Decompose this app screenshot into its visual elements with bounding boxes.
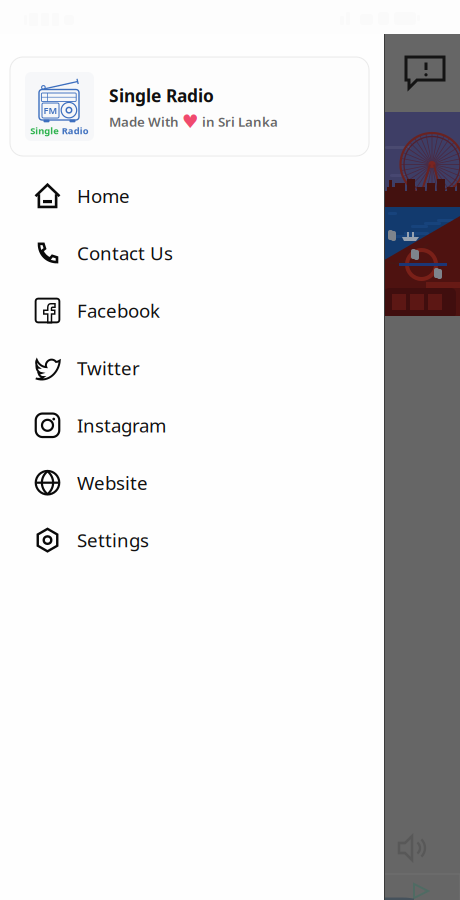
staticText: FM — [43, 104, 57, 117]
button[interactable]: Instagram — [0, 397, 384, 454]
staticText: Contact Us — [77, 241, 173, 265]
button[interactable]: Contact Us — [0, 224, 384, 282]
staticText: ♥ — [182, 111, 199, 132]
staticText: Made With — [109, 113, 179, 130]
staticText: Radio — [62, 124, 89, 137]
button[interactable]: Website — [0, 454, 384, 511]
staticText: in Sri Lanka — [202, 113, 278, 130]
button[interactable]: Home — [0, 167, 384, 224]
button[interactable]: Facebook — [0, 282, 384, 339]
staticText: Instagram — [77, 413, 166, 438]
staticText: Home — [77, 183, 130, 208]
staticText: Settings — [77, 528, 149, 552]
staticText: Single — [30, 124, 59, 137]
staticText: Facebook — [77, 298, 160, 323]
staticText: Website — [77, 470, 148, 495]
button[interactable]: Settings — [0, 511, 384, 569]
staticText: Twitter — [77, 355, 140, 380]
staticText: Single Radio — [109, 84, 214, 107]
button[interactable]: Twitter — [0, 339, 384, 397]
